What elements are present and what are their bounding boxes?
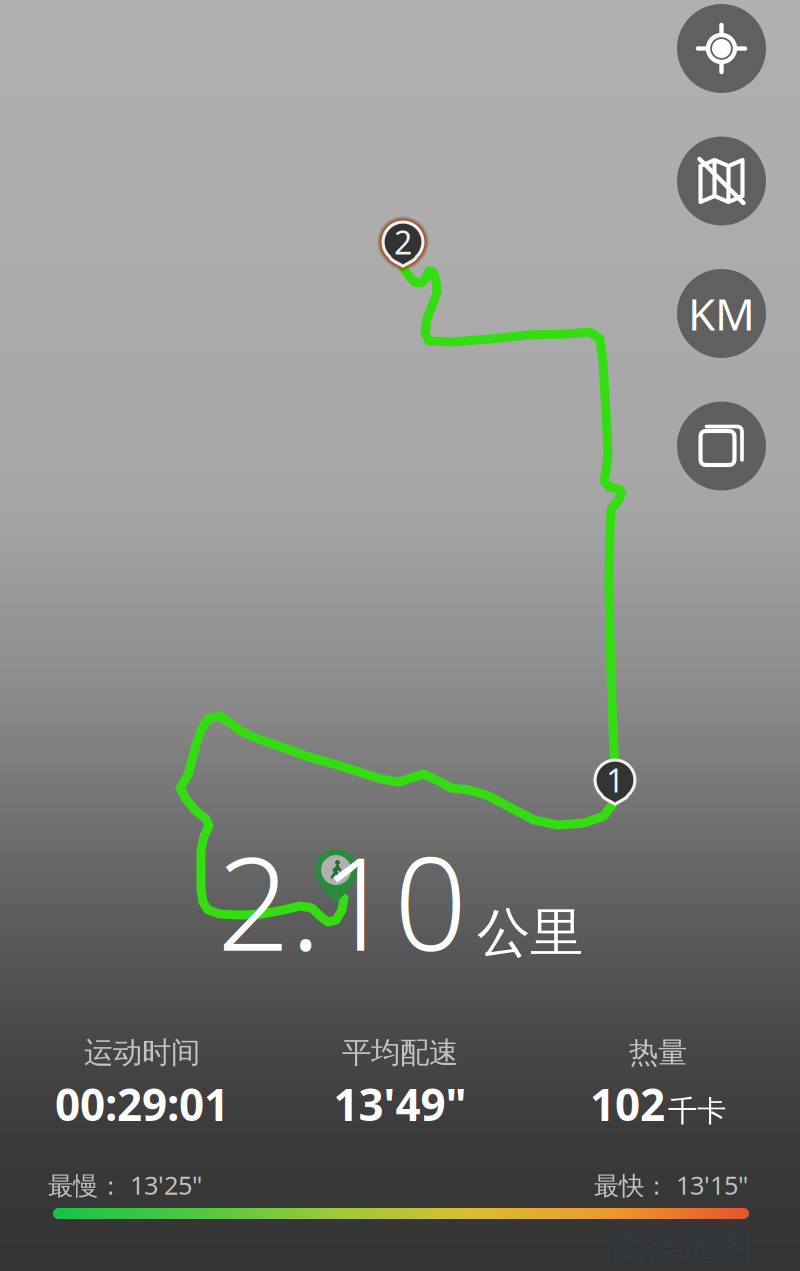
staticText: 公里 — [477, 900, 583, 966]
staticText: 运动时间 — [84, 1035, 200, 1071]
staticText: KM — [688, 284, 755, 343]
button[interactable]: Hide map — [677, 136, 766, 225]
button[interactable]: Map layers — [677, 401, 766, 490]
staticText: 2.10 — [217, 816, 467, 986]
staticText: 高德地图 — [612, 1227, 752, 1269]
staticText: 千卡 — [668, 1093, 726, 1129]
staticText: 热量 — [629, 1035, 687, 1071]
staticText: 00:29:01 — [55, 1075, 229, 1133]
staticText: 1 — [606, 759, 624, 801]
button[interactable]: Kilometres — [677, 269, 766, 358]
staticText: 13'49" — [333, 1075, 466, 1133]
button[interactable]: Locate me — [677, 4, 766, 93]
staticText: 平均配速 — [342, 1035, 458, 1071]
staticText: 最快： 13'15" — [594, 1168, 748, 1202]
staticText: 102 — [590, 1075, 665, 1133]
staticText: 2 — [394, 221, 412, 263]
staticText: 最慢： 13'25" — [48, 1168, 202, 1202]
